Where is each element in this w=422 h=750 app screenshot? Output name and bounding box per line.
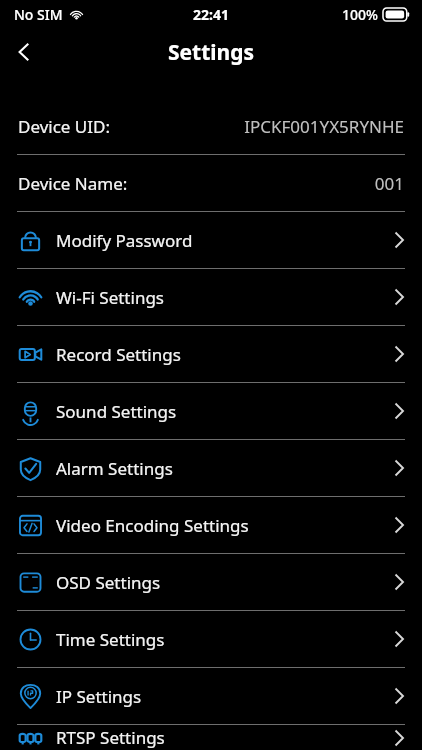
staticText: Device UID: — [18, 115, 111, 138]
staticText: Video Encoding Settings — [56, 514, 249, 537]
staticText: Sound Settings — [56, 400, 177, 423]
staticText: Time Settings — [56, 628, 165, 651]
button[interactable]: RTSP Settings — [0, 725, 422, 750]
button[interactable]: OSD Settings — [0, 554, 422, 610]
button[interactable]: Video Encoding Settings — [0, 497, 422, 553]
staticText: IP Settings — [56, 685, 142, 708]
staticText: IPCKF001YX5RYNHE — [244, 115, 404, 138]
button[interactable]: Record Settings — [0, 326, 422, 382]
button[interactable]: IP Settings — [0, 668, 422, 724]
staticText: RTSP Settings — [56, 726, 165, 749]
button[interactable]: Back — [0, 28, 48, 76]
staticText: 22:41 — [193, 5, 229, 24]
staticText: Device Name: — [18, 172, 128, 195]
staticText: Settings — [168, 38, 255, 67]
staticText: Alarm Settings — [56, 457, 173, 480]
button[interactable]: Sound Settings — [0, 383, 422, 439]
staticText: 001 — [374, 172, 404, 195]
button[interactable]: Time Settings — [0, 611, 422, 667]
staticText: OSD Settings — [56, 571, 161, 594]
staticText: Modify Password — [56, 229, 193, 252]
staticText: No SIM — [14, 5, 63, 24]
staticText: Wi-Fi Settings — [56, 286, 164, 309]
button[interactable]: Alarm Settings — [0, 440, 422, 496]
staticText: 100% — [342, 5, 378, 24]
staticText: Record Settings — [56, 343, 181, 366]
button[interactable]: Wi-Fi Settings — [0, 269, 422, 325]
button[interactable]: Device Name: — [0, 155, 422, 211]
button[interactable]: Modify Password — [0, 212, 422, 268]
button[interactable]: Device UID: — [0, 98, 422, 154]
